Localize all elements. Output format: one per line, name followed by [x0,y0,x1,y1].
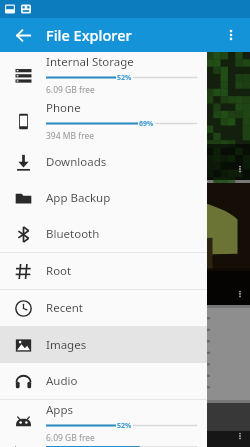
button[interactable]: Apps [0,400,207,446]
button[interactable]: Item options [235,431,245,441]
staticText: Images [46,337,87,353]
staticText: File Explorer [46,25,132,45]
staticText: 394 MB free [46,130,95,142]
button[interactable]: Audio [0,363,207,399]
button[interactable]: Back [6,18,40,52]
button[interactable]: Processes [0,446,207,447]
staticText: Root [46,263,72,279]
staticText: App Backup [46,190,111,206]
button[interactable]: Downloads [0,144,207,180]
staticText: 52% [117,73,132,82]
staticText: Bluetooth [46,226,100,242]
button[interactable]: More options [216,20,246,50]
button[interactable]: Images [0,327,207,363]
button[interactable]: Phone [0,98,207,144]
button[interactable]: Recent [0,290,207,326]
staticText: Apps [46,402,74,418]
staticText: Recent [46,300,83,316]
staticText: Audio [46,373,78,389]
staticText: 6.09 GB free [46,432,95,444]
staticText: Downloads [46,154,107,170]
button[interactable]: App Backup [0,180,207,216]
staticText: 6.09 GB free [46,84,95,96]
staticText: 52% [117,421,132,430]
button[interactable]: Item options [235,164,245,174]
button[interactable]: Internal Storage [0,52,207,98]
button[interactable]: Root [0,253,207,289]
button[interactable]: Bluetooth [0,216,207,252]
button[interactable]: Item options [235,289,245,299]
staticText: Phone [46,100,81,116]
staticText: 69% [139,119,154,128]
staticText: Internal Storage [46,54,134,70]
